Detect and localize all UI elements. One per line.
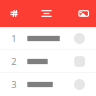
button[interactable]: 1: [0, 27, 96, 50]
button[interactable]: Photos: [74, 0, 94, 27]
button[interactable]: 2: [0, 50, 96, 73]
button[interactable]: Tags: [4, 0, 24, 27]
button[interactable]: Align center: [36, 0, 56, 27]
staticText: 3: [11, 78, 16, 91]
staticText: 2: [11, 55, 16, 68]
button[interactable]: 3: [0, 73, 96, 96]
staticText: 1: [11, 32, 16, 45]
